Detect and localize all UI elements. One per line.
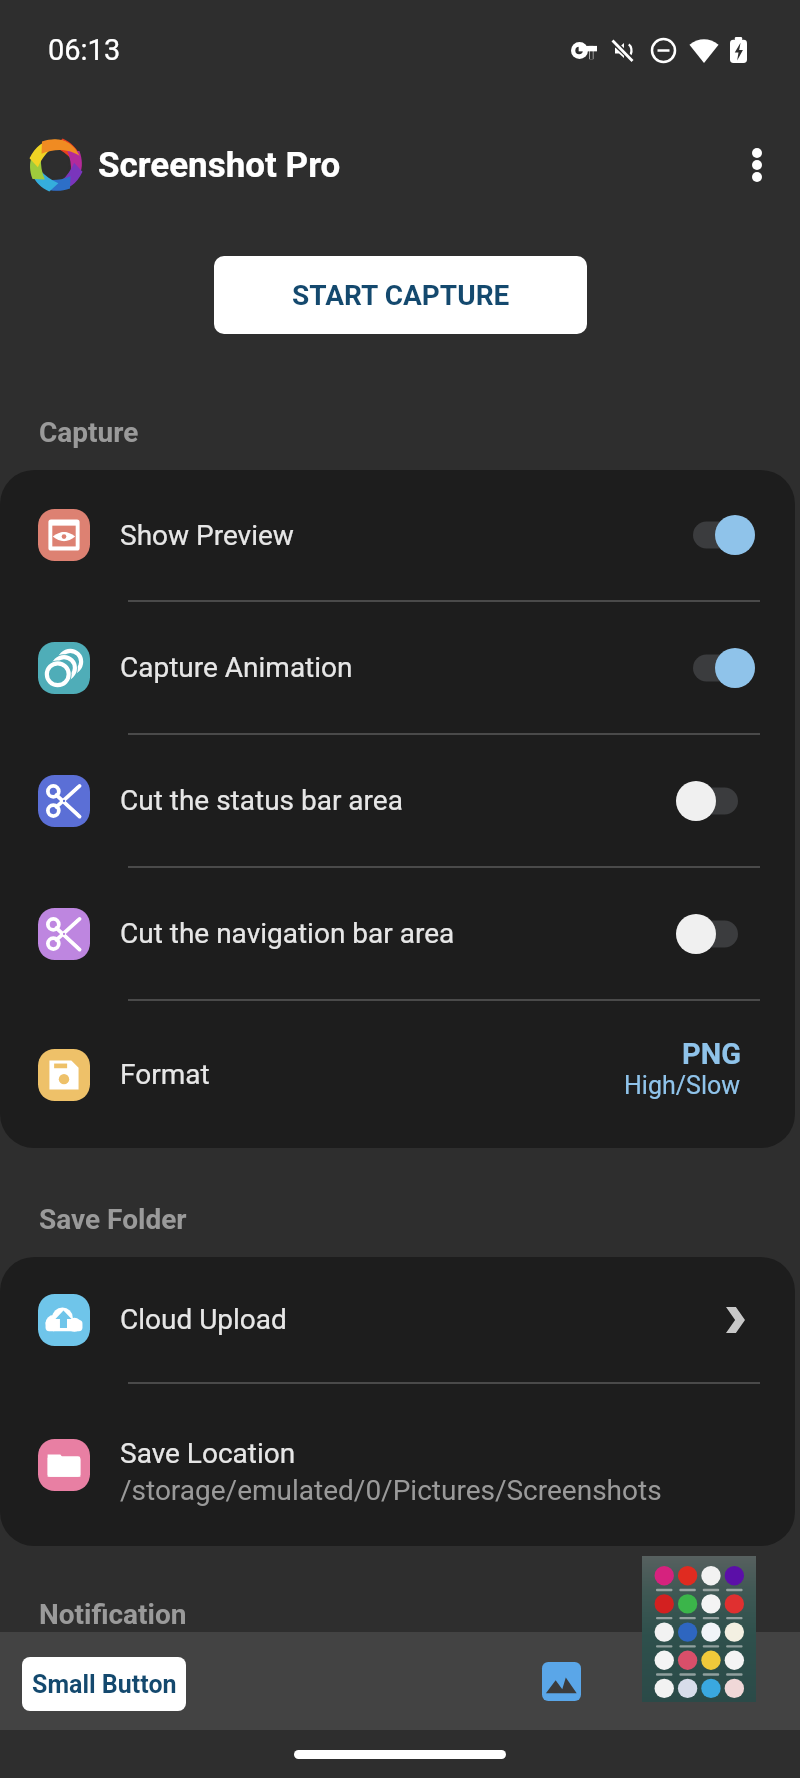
button[interactable]: Format: [0, 1001, 795, 1148]
staticText: Capture Animation: [120, 651, 353, 684]
staticText: High/Slow: [624, 1071, 741, 1100]
staticText: Save Folder: [39, 1203, 187, 1236]
button[interactable]: Image: [530, 1650, 592, 1712]
button[interactable]: More options: [717, 125, 797, 205]
button[interactable]: Cut the status bar area: [0, 735, 795, 866]
button[interactable]: Small Button: [22, 1657, 186, 1711]
staticText: /storage/emulated/0/Pictures/Screenshots: [120, 1474, 662, 1507]
staticText: Notification: [39, 1598, 187, 1631]
staticText: START CAPTURE: [292, 279, 510, 312]
button[interactable]: Show Preview: [0, 470, 795, 600]
staticText: PNG: [682, 1037, 741, 1071]
staticText: Cut the navigation bar area: [120, 917, 455, 950]
staticText: Screenshot Pro: [98, 145, 341, 186]
button[interactable]: Capture Animation: [0, 602, 795, 733]
staticText: Small Button: [32, 1670, 177, 1699]
button[interactable]: Cut the navigation bar area: [0, 868, 795, 999]
staticText: Capture: [39, 416, 139, 449]
button[interactable]: Cloud Upload: [0, 1257, 795, 1382]
staticText: Format: [120, 1058, 210, 1091]
staticText: Cut the status bar area: [120, 784, 403, 817]
button[interactable]: START CAPTURE: [214, 256, 587, 334]
staticText: 06:13: [48, 33, 121, 67]
staticText: Cloud Upload: [120, 1303, 287, 1336]
staticText: Show Preview: [120, 519, 294, 552]
staticText: Save Location: [120, 1437, 296, 1470]
button[interactable]: Save Location: [0, 1384, 795, 1546]
